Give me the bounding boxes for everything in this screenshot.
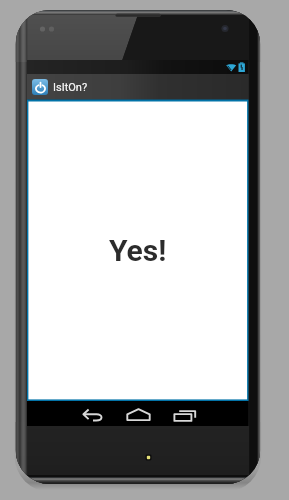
- staticText: Yes!: [109, 233, 167, 268]
- staticText: IsItOn?: [53, 81, 88, 94]
- button[interactable]: Recent apps: [164, 401, 206, 425]
- button[interactable]: Back: [71, 401, 113, 425]
- button[interactable]: IsItOn?: [27, 74, 249, 100]
- button[interactable]: Home: [118, 401, 160, 425]
